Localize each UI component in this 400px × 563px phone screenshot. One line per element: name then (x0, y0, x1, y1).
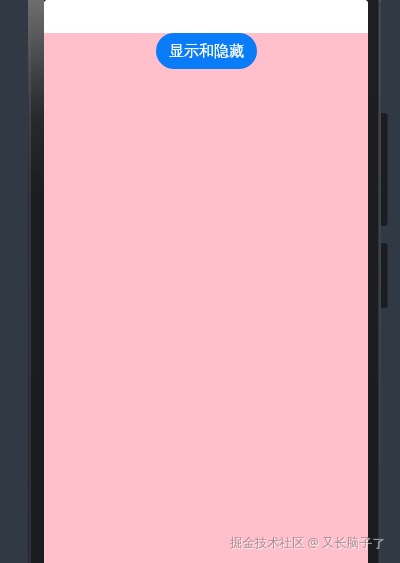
button[interactable]: 显示和隐藏 (156, 33, 257, 69)
staticText: 掘金技术社区 @ 又长脑子了 (231, 535, 385, 552)
staticText: 显示和隐藏 (169, 42, 244, 61)
staticText: 掘金技术社区 @ 又长脑子了 (230, 534, 384, 551)
